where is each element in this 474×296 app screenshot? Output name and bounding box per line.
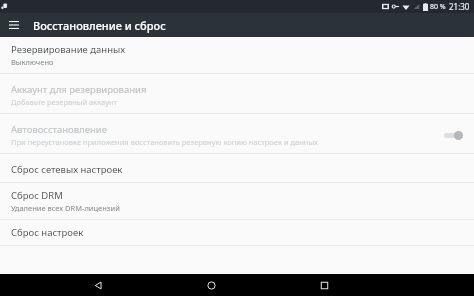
button[interactable]: Сброс сетевых настроек — [0, 157, 474, 182]
staticText: Сброс настроек — [11, 226, 84, 239]
button[interactable]: Аккаунт для резервирования — [0, 77, 474, 113]
staticText: Выключено — [11, 57, 54, 67]
staticText: Добавьте резервный аккаунт — [11, 97, 118, 107]
staticText: Удаление всех DRM-лицензий — [11, 203, 120, 213]
button[interactable]: Home — [200, 274, 222, 296]
button[interactable]: Recent apps — [313, 274, 335, 296]
staticText: 80 % — [430, 2, 446, 12]
button[interactable]: Автовосстановление — [0, 117, 474, 153]
button[interactable]: Сброс DRM — [0, 183, 474, 219]
staticText: Восстановление и сброс — [33, 18, 166, 33]
button[interactable]: Сброс настроек — [0, 220, 474, 245]
button[interactable]: Резервирование данных — [0, 37, 474, 73]
staticText: Автовосстановление — [11, 123, 107, 136]
staticText: Резервирование данных — [11, 43, 126, 56]
button[interactable]: Auto restore toggle — [440, 127, 466, 143]
staticText: Сброс сетевых настроек — [11, 163, 123, 176]
staticText: 21:30 — [449, 1, 470, 12]
staticText: При переустановке приложения восстановит… — [11, 137, 318, 147]
staticText: Аккаунт для резервирования — [11, 83, 147, 96]
staticText: Сброс DRM — [11, 189, 63, 202]
button[interactable]: Back — [87, 274, 109, 296]
button[interactable]: Open navigation menu — [6, 17, 22, 33]
